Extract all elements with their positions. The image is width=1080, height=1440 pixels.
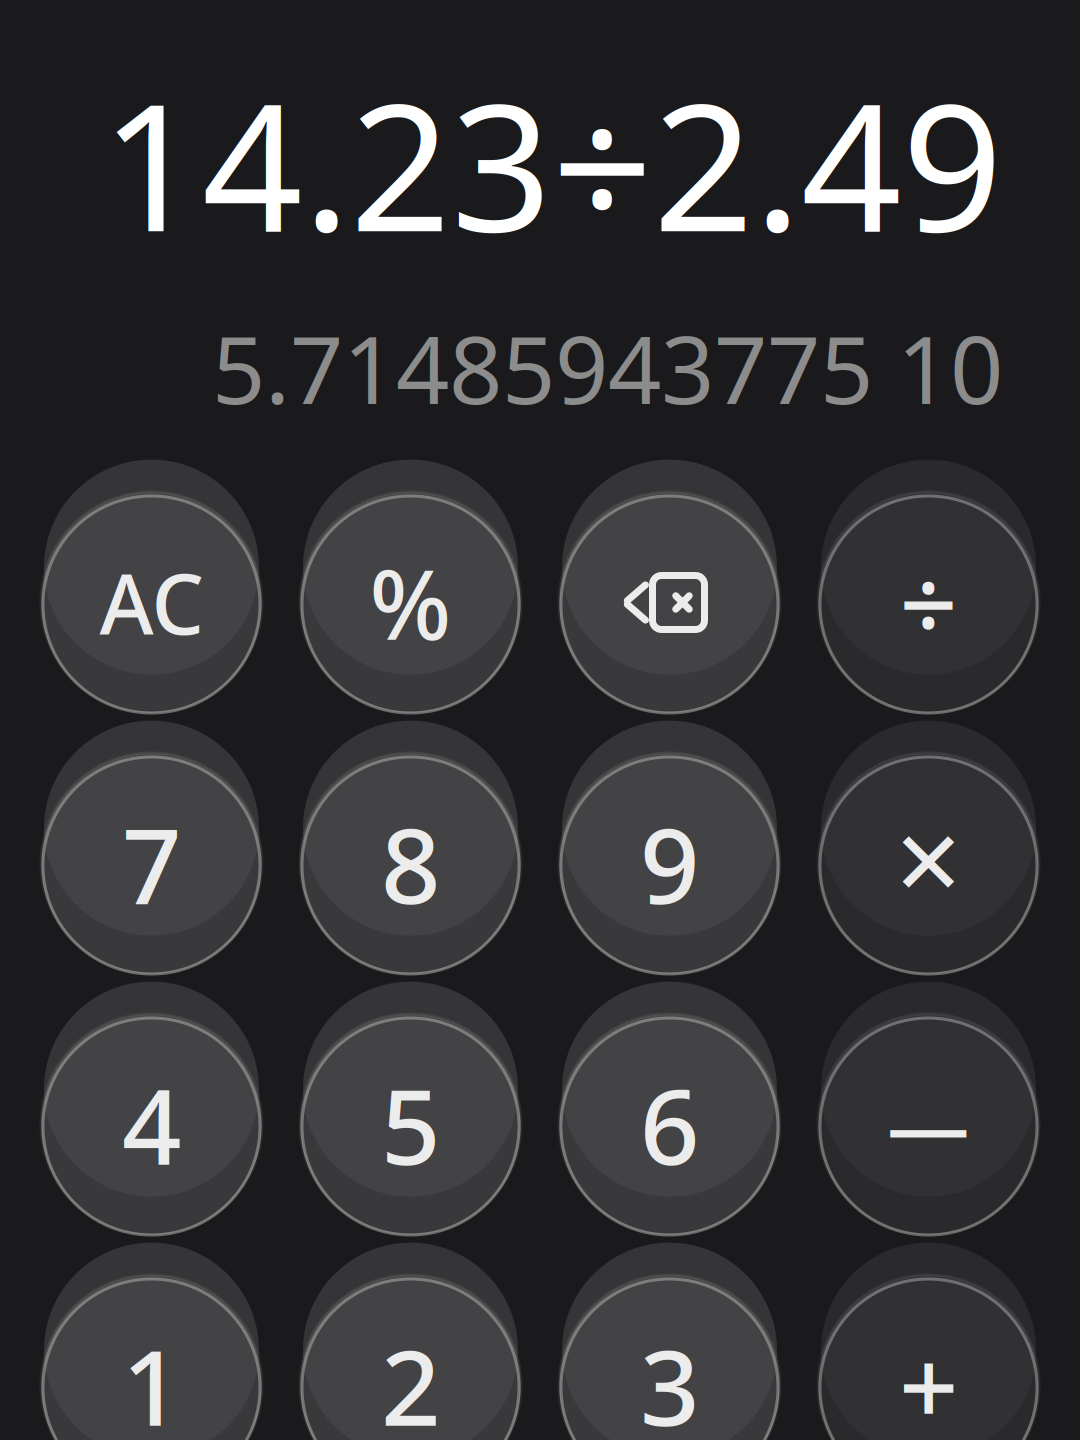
staticText: 5 [381,1055,440,1193]
staticText: 3 [640,1316,699,1440]
staticText: 6 [640,1055,699,1193]
staticText: + [899,1316,958,1440]
button[interactable]: 1 [41,1275,262,1440]
button[interactable]: 6 [559,1014,780,1235]
staticText: ✕ [891,814,965,913]
button[interactable]: All clear [41,492,262,713]
button[interactable]: Divide [818,492,1039,713]
button[interactable]: % [300,492,521,713]
button[interactable]: Delete [559,492,780,713]
staticText: 14.23÷2.49 [101,46,1003,280]
staticText: 1 [122,1316,181,1440]
button[interactable]: 8 [300,753,521,974]
staticText: AC [99,548,203,657]
staticText: 2 [381,1316,440,1440]
button[interactable]: 3 [559,1275,780,1440]
button[interactable]: Minus [818,1014,1039,1235]
staticText: 5.71485943775 10 [212,306,1003,430]
button[interactable]: 2 [300,1275,521,1440]
button[interactable]: 9 [559,753,780,974]
staticText: % [369,539,451,666]
staticText: — [887,1070,970,1179]
staticText: 8 [381,794,440,932]
button[interactable]: 4 [41,1014,262,1235]
staticText: 7 [122,794,181,932]
button[interactable]: Multiply [818,753,1039,974]
staticText: 4 [122,1055,181,1193]
staticText: ÷ [899,535,957,670]
button[interactable]: Plus [818,1275,1039,1440]
staticText: 9 [640,794,699,932]
button[interactable]: 7 [41,753,262,974]
button[interactable]: 5 [300,1014,521,1235]
